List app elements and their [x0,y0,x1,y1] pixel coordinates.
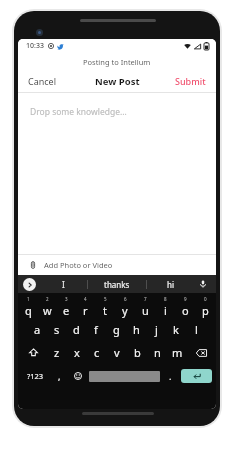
button[interactable]: j [146,318,166,341]
staticText: 1 [27,296,30,302]
button[interactable]: 2 [38,295,57,318]
button[interactable]: . [162,364,179,388]
button[interactable]: f [86,318,106,341]
staticText: n [154,345,161,360]
staticText: z [54,345,60,360]
staticText: l [195,322,198,337]
staticText: 7 [144,296,147,302]
staticText: a [34,322,41,337]
staticText: 0 [204,296,207,302]
button[interactable]: 0 [195,295,215,318]
staticText: Cancel [28,75,57,87]
staticText: thanks [104,279,130,290]
staticText: r [83,303,88,318]
button[interactable]: 5 [95,295,115,318]
button[interactable]: hi [147,275,194,293]
button[interactable]: 4 [76,295,95,318]
button[interactable]: Enter [181,369,212,383]
button[interactable]: c [87,341,107,364]
staticText: g [113,322,120,337]
staticText: b [134,345,141,360]
staticText: s [54,322,60,337]
button[interactable]: ?123 [20,364,51,388]
staticText: p [202,303,209,318]
button[interactable]: s [47,318,66,341]
button[interactable]: 9 [175,295,195,318]
staticText: i [164,303,167,318]
staticText: e [63,303,70,318]
staticText: m [172,345,183,360]
button[interactable]: b [127,341,147,364]
button[interactable]: x [67,341,87,364]
staticText: Submit [175,75,206,87]
staticText: 2 [46,296,49,302]
staticText: h [133,322,140,337]
button[interactable]: 1 [19,295,38,318]
staticText: q [25,303,32,318]
staticText: 8 [164,296,167,302]
button[interactable]: n [147,341,167,364]
staticText: Drop some knowledge... [30,106,127,118]
button[interactable]: Add Photo or Video [18,255,216,275]
staticText: o [182,303,189,318]
button[interactable]: thanks [88,275,146,293]
staticText: ?123 [27,371,44,381]
button[interactable]: h [126,318,146,341]
staticText: I [62,279,65,290]
button[interactable]: 7 [135,295,155,318]
button[interactable]: Cancel [18,70,67,92]
staticText: . [169,370,172,382]
staticText: t [103,303,107,318]
button[interactable]: m [167,341,187,364]
button[interactable]: Submit [165,70,216,92]
button[interactable]: l [186,318,206,341]
staticText: j [155,322,158,337]
staticText: w [43,303,52,318]
staticText: 9 [184,296,187,302]
staticText: c [94,345,100,360]
staticText: Posting to Intellum [83,57,151,67]
staticText: x [74,345,80,360]
staticText: v [114,345,120,360]
staticText: hi [167,279,175,290]
button[interactable]: Shift [19,341,47,364]
button[interactable]: , [51,364,68,388]
staticText: 3 [65,296,68,302]
button[interactable]: Drop some knowledge... [18,93,216,254]
button[interactable]: 6 [115,295,135,318]
button[interactable]: d [66,318,86,341]
staticText: d [73,322,80,337]
staticText: u [142,303,149,318]
button[interactable]: k [166,318,186,341]
button[interactable]: 8 [155,295,175,318]
staticText: 4 [84,296,87,302]
button[interactable]: Emoji [68,364,87,388]
button[interactable]: v [107,341,127,364]
staticText: 10:33 [26,41,44,51]
staticText: 6 [124,296,127,302]
staticText: Add Photo or Video [44,260,113,270]
button[interactable]: z [47,341,67,364]
button[interactable]: g [106,318,126,341]
button[interactable]: a [28,318,47,341]
button[interactable]: I [40,275,87,293]
button[interactable]: More suggestions [23,278,36,291]
button[interactable]: Backspace [187,341,215,364]
button[interactable]: 3 [57,295,76,318]
staticText: y [122,303,128,318]
staticText: k [173,322,179,337]
staticText: New Post [95,75,140,88]
staticText: 5 [104,296,107,302]
staticText: f [94,322,98,337]
button[interactable]: Voice input [196,277,210,291]
staticText: , [58,370,61,382]
